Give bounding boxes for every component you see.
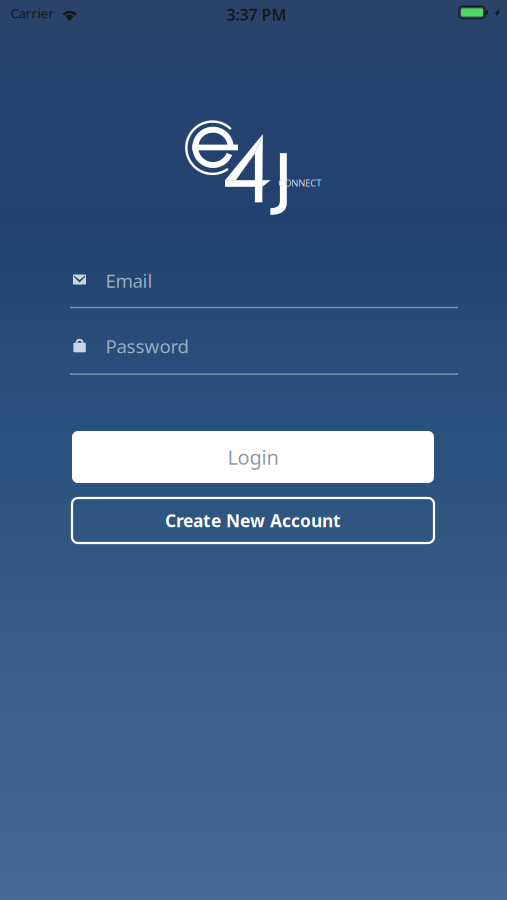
button[interactable]: Create New Account (72, 498, 434, 543)
staticText: Email (105, 268, 152, 293)
staticText: Password (105, 334, 188, 358)
staticText: Login (227, 444, 278, 470)
staticText: 3:37 PM (227, 4, 287, 25)
button[interactable]: Login (72, 431, 434, 483)
staticText: CONNECT (278, 177, 321, 189)
staticText: Carrier (11, 4, 55, 22)
staticText: Create New Account (165, 509, 341, 532)
